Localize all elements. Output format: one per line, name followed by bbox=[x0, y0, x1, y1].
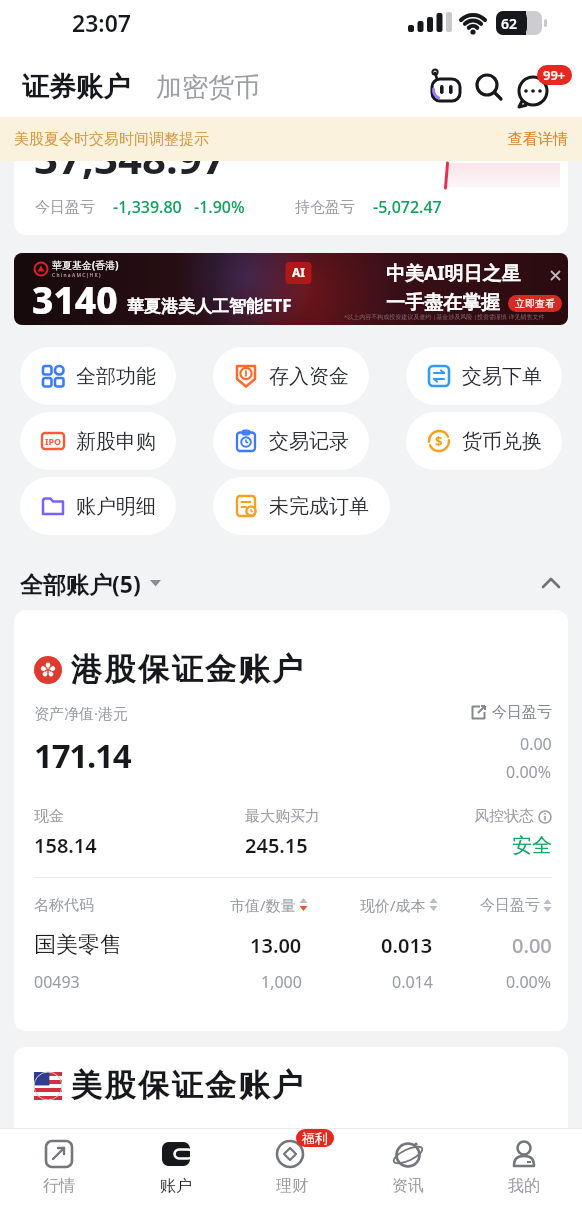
button[interactable]: 证券账户 bbox=[22, 70, 130, 104]
staticText: $ bbox=[435, 432, 443, 450]
button[interactable]: 存入资金 bbox=[213, 347, 369, 405]
staticText: 23:07 bbox=[72, 7, 131, 38]
staticText: *以上内容不构成投资建议及邀约 |基金涉及风险 |投资需谨慎 详见销售文件 bbox=[344, 313, 545, 321]
staticText: -5,072.47 bbox=[373, 196, 442, 218]
staticText: 全部功能 bbox=[76, 364, 156, 389]
staticText: 0.00 bbox=[520, 733, 552, 755]
button[interactable]: 港股保证金账户 bbox=[14, 610, 568, 1031]
staticText: 全部账户(5) bbox=[20, 568, 141, 598]
staticText: 货币兑换 bbox=[462, 429, 542, 454]
button[interactable]: 加密货币 bbox=[156, 71, 260, 104]
button[interactable] bbox=[542, 577, 560, 589]
button[interactable]: 福利 bbox=[234, 1137, 350, 1196]
staticText: 行情 bbox=[43, 1176, 75, 1196]
staticText: 名称代码 bbox=[34, 896, 94, 915]
staticText: 62 bbox=[501, 14, 518, 33]
button[interactable]: 账户 bbox=[117, 1137, 234, 1196]
staticText: 3140 bbox=[32, 274, 118, 324]
staticText: AI bbox=[292, 264, 305, 280]
staticText: -1,339.80 bbox=[113, 196, 182, 218]
staticText: 0.00 bbox=[512, 932, 552, 959]
staticText: 0.014 bbox=[392, 971, 433, 993]
staticText: 查看详情 bbox=[508, 130, 568, 149]
button[interactable]: 行情 bbox=[0, 1137, 117, 1196]
button[interactable]: 交易下单 bbox=[406, 347, 562, 405]
staticText: 華夏港美人工智能ETF bbox=[127, 294, 292, 317]
staticText: 158.14 bbox=[34, 832, 97, 859]
staticText: C h i n a A M C ( H K ) bbox=[52, 272, 101, 279]
staticText: 现金 bbox=[34, 807, 64, 826]
staticText: 171.14 bbox=[34, 733, 131, 778]
staticText: 市值/数量 bbox=[230, 895, 296, 915]
staticText: 37,348.97 bbox=[34, 161, 226, 186]
staticText: 交易记录 bbox=[269, 429, 349, 454]
button[interactable]: IPO bbox=[20, 412, 176, 470]
button[interactable]: 未完成订单 bbox=[213, 477, 390, 535]
staticText: 账户 bbox=[160, 1176, 192, 1196]
staticText: 美股夏令时交易时间调整提示 bbox=[14, 130, 209, 149]
staticText: -1.90% bbox=[194, 196, 245, 218]
staticText: 立即查看 bbox=[515, 297, 555, 310]
staticText: 中美AI明日之星 bbox=[386, 260, 521, 286]
staticText: IPO bbox=[45, 435, 62, 447]
staticText: 理财 bbox=[276, 1176, 308, 1196]
staticText: 现价/成本 bbox=[360, 895, 426, 915]
staticText: 资产净值·港元 bbox=[34, 703, 129, 723]
button[interactable]: 我的 bbox=[466, 1137, 582, 1196]
staticText: 最大购买力 bbox=[245, 807, 320, 826]
staticText: 港股保证金账户 bbox=[71, 650, 306, 689]
staticText: 国美零售 bbox=[34, 931, 122, 959]
button[interactable]: 立即查看 bbox=[515, 297, 555, 310]
button[interactable]: 资讯 bbox=[350, 1137, 466, 1196]
button[interactable] bbox=[428, 69, 464, 105]
staticText: 存入资金 bbox=[269, 364, 349, 389]
button[interactable]: 美股保证金账户 bbox=[14, 1047, 568, 1128]
staticText: 资讯 bbox=[392, 1176, 424, 1196]
staticText: 福利 bbox=[302, 1130, 328, 1146]
staticText: 美股保证金账户 bbox=[71, 1066, 306, 1105]
button[interactable]: $ bbox=[406, 412, 562, 470]
staticText: 我的 bbox=[508, 1176, 540, 1196]
button[interactable]: AI bbox=[14, 253, 568, 325]
staticText: 账户明细 bbox=[76, 494, 156, 519]
button[interactable] bbox=[474, 72, 504, 102]
staticText: 0.00% bbox=[506, 761, 552, 783]
staticText: 00493 bbox=[34, 971, 80, 993]
staticText: 持仓盈亏 bbox=[295, 198, 355, 217]
staticText: 1,000 bbox=[261, 971, 302, 993]
staticText: 今日盈亏 bbox=[35, 198, 95, 217]
staticText: 0.00% bbox=[506, 971, 552, 993]
staticText: 新股申购 bbox=[76, 429, 156, 454]
staticText: 99+ bbox=[543, 66, 566, 84]
button[interactable]: 账户明细 bbox=[20, 477, 176, 535]
button[interactable]: 全部功能 bbox=[20, 347, 176, 405]
button[interactable]: 交易记录 bbox=[213, 412, 369, 470]
staticText: 245.15 bbox=[245, 832, 308, 859]
button[interactable]: 全部账户(5) bbox=[20, 568, 162, 598]
staticText: 一手盡在掌握 bbox=[386, 291, 500, 315]
button[interactable]: 99+ bbox=[516, 65, 572, 109]
button[interactable]: 美股夏令时交易时间调整提示 bbox=[0, 117, 582, 161]
staticText: 13.00 bbox=[250, 932, 302, 959]
staticText: 今日盈亏 bbox=[480, 896, 540, 915]
staticText: 风控状态 bbox=[474, 807, 534, 826]
staticText: 交易下单 bbox=[462, 364, 542, 389]
staticText: 0.013 bbox=[381, 932, 433, 959]
staticText: 未完成订单 bbox=[269, 494, 369, 519]
staticText: 今日盈亏 bbox=[492, 703, 552, 722]
staticText: 華夏基金(香港) bbox=[52, 258, 119, 272]
staticText: 安全 bbox=[512, 833, 552, 858]
